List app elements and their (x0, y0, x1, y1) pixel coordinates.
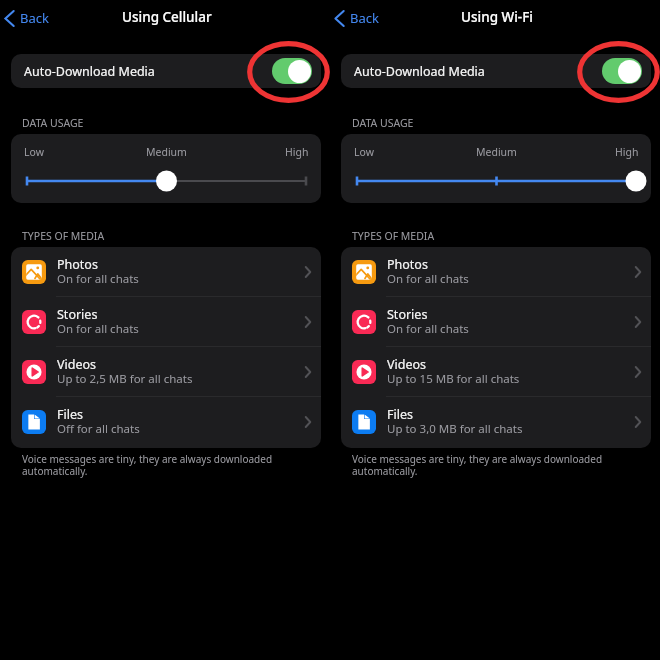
staticText: Voice messages are tiny, they are always… (22, 452, 284, 478)
button[interactable]: Videos (11, 347, 321, 397)
button[interactable]: Back (334, 8, 379, 28)
staticText: Medium (476, 145, 517, 159)
button[interactable]: Data usage slider (27, 169, 306, 193)
staticText: Back (20, 9, 49, 27)
staticText: Stories (387, 306, 428, 323)
button[interactable]: Back (4, 8, 49, 28)
staticText: Up to 2,5 MB for all chats (57, 371, 193, 387)
staticText: Using Cellular (122, 8, 212, 26)
staticText: TYPES OF MEDIA (352, 229, 435, 243)
staticText: Back (350, 9, 379, 27)
staticText: Videos (57, 356, 97, 373)
staticText: Auto-Download Media (24, 63, 155, 80)
staticText: On for all chats (57, 321, 139, 337)
staticText: On for all chats (387, 271, 469, 287)
button[interactable]: Files (341, 397, 651, 447)
staticText: Videos (387, 356, 427, 373)
button[interactable]: Data usage slider (357, 169, 636, 193)
staticText: On for all chats (57, 271, 139, 287)
button[interactable]: Stories (341, 297, 651, 347)
other: Highlight (247, 41, 330, 103)
staticText: Low (24, 145, 44, 159)
staticText: Up to 15 MB for all chats (387, 371, 520, 387)
staticText: DATA USAGE (352, 116, 414, 130)
staticText: High (615, 145, 639, 159)
staticText: Voice messages are tiny, they are always… (352, 452, 614, 478)
staticText: Photos (57, 256, 98, 273)
staticText: TYPES OF MEDIA (22, 229, 105, 243)
staticText: Stories (57, 306, 98, 323)
staticText: On for all chats (387, 321, 469, 337)
button[interactable]: Auto-Download Media toggle, on (272, 58, 312, 84)
button[interactable]: Auto-Download Media (341, 54, 651, 88)
staticText: High (285, 145, 309, 159)
button[interactable]: Auto-Download Media toggle, on (602, 58, 642, 84)
staticText: Files (57, 406, 83, 423)
button[interactable]: Photos (341, 247, 651, 297)
button[interactable]: Stories (11, 297, 321, 347)
button[interactable]: Photos (11, 247, 321, 297)
staticText: Medium (146, 145, 187, 159)
staticText: Using Wi-Fi (461, 8, 533, 26)
staticText: Auto-Download Media (354, 63, 485, 80)
other: Highlight (577, 41, 660, 103)
staticText: Photos (387, 256, 428, 273)
staticText: DATA USAGE (22, 116, 84, 130)
staticText: Up to 3,0 MB for all chats (387, 421, 523, 437)
staticText: Files (387, 406, 413, 423)
button[interactable]: Files (11, 397, 321, 447)
button[interactable]: Auto-Download Media (11, 54, 321, 88)
staticText: Off for all chats (57, 421, 140, 437)
button[interactable]: Videos (341, 347, 651, 397)
staticText: Low (354, 145, 374, 159)
